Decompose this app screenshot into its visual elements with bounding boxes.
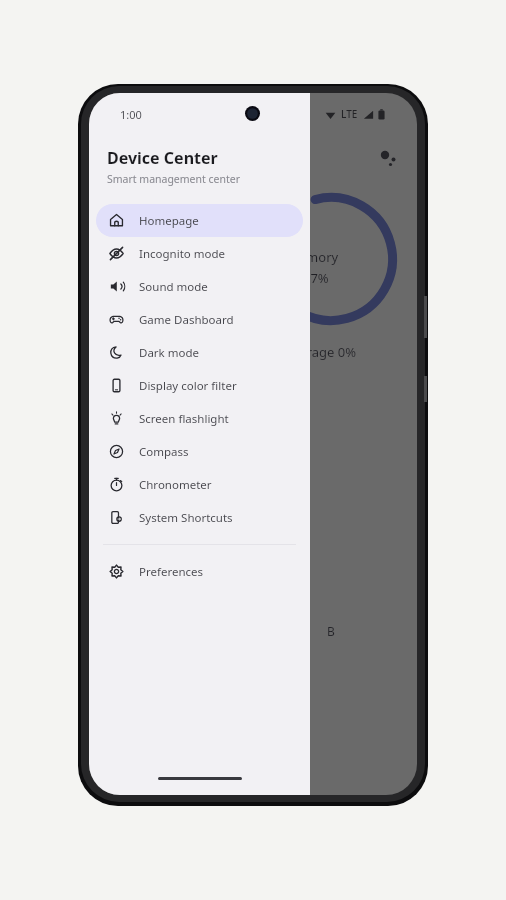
staticText: Preferences xyxy=(139,564,204,580)
button[interactable]: Game Dashboard xyxy=(96,303,303,336)
button[interactable]: Display color filter xyxy=(96,369,303,402)
staticText: Memory xyxy=(287,248,339,266)
staticText: Dark mode xyxy=(139,345,199,361)
staticText: Game Dashboard xyxy=(139,312,234,328)
staticText: Storage 0% xyxy=(287,343,357,361)
staticText: 57% xyxy=(303,269,329,287)
button[interactable]: Homepage xyxy=(96,204,303,237)
staticText: Chronometer xyxy=(139,477,212,493)
staticText: 1:00 xyxy=(120,107,142,122)
staticText: System Shortcuts xyxy=(139,510,233,526)
staticText: Sound mode xyxy=(139,279,208,295)
staticText: Device Center xyxy=(107,147,218,169)
staticText: Screen flashlight xyxy=(139,411,229,427)
staticText: Compass xyxy=(139,444,189,460)
button[interactable]: System Shortcuts xyxy=(96,501,303,534)
staticText: B xyxy=(327,623,335,639)
button[interactable]: Screen flashlight xyxy=(96,402,303,435)
button[interactable]: Compass xyxy=(96,435,303,468)
button[interactable]: Sound mode xyxy=(96,270,303,303)
staticText: Smart management center xyxy=(107,172,241,186)
button[interactable]: Preferences xyxy=(96,555,303,588)
staticText: LTE xyxy=(341,107,358,121)
button[interactable]: Chronometer xyxy=(96,468,303,501)
staticText: Incognito mode xyxy=(139,246,225,262)
staticText: Display color filter xyxy=(139,378,237,394)
button[interactable]: Incognito mode xyxy=(96,237,303,270)
staticText: Homepage xyxy=(139,213,199,229)
button[interactable]: Dark mode xyxy=(96,336,303,369)
